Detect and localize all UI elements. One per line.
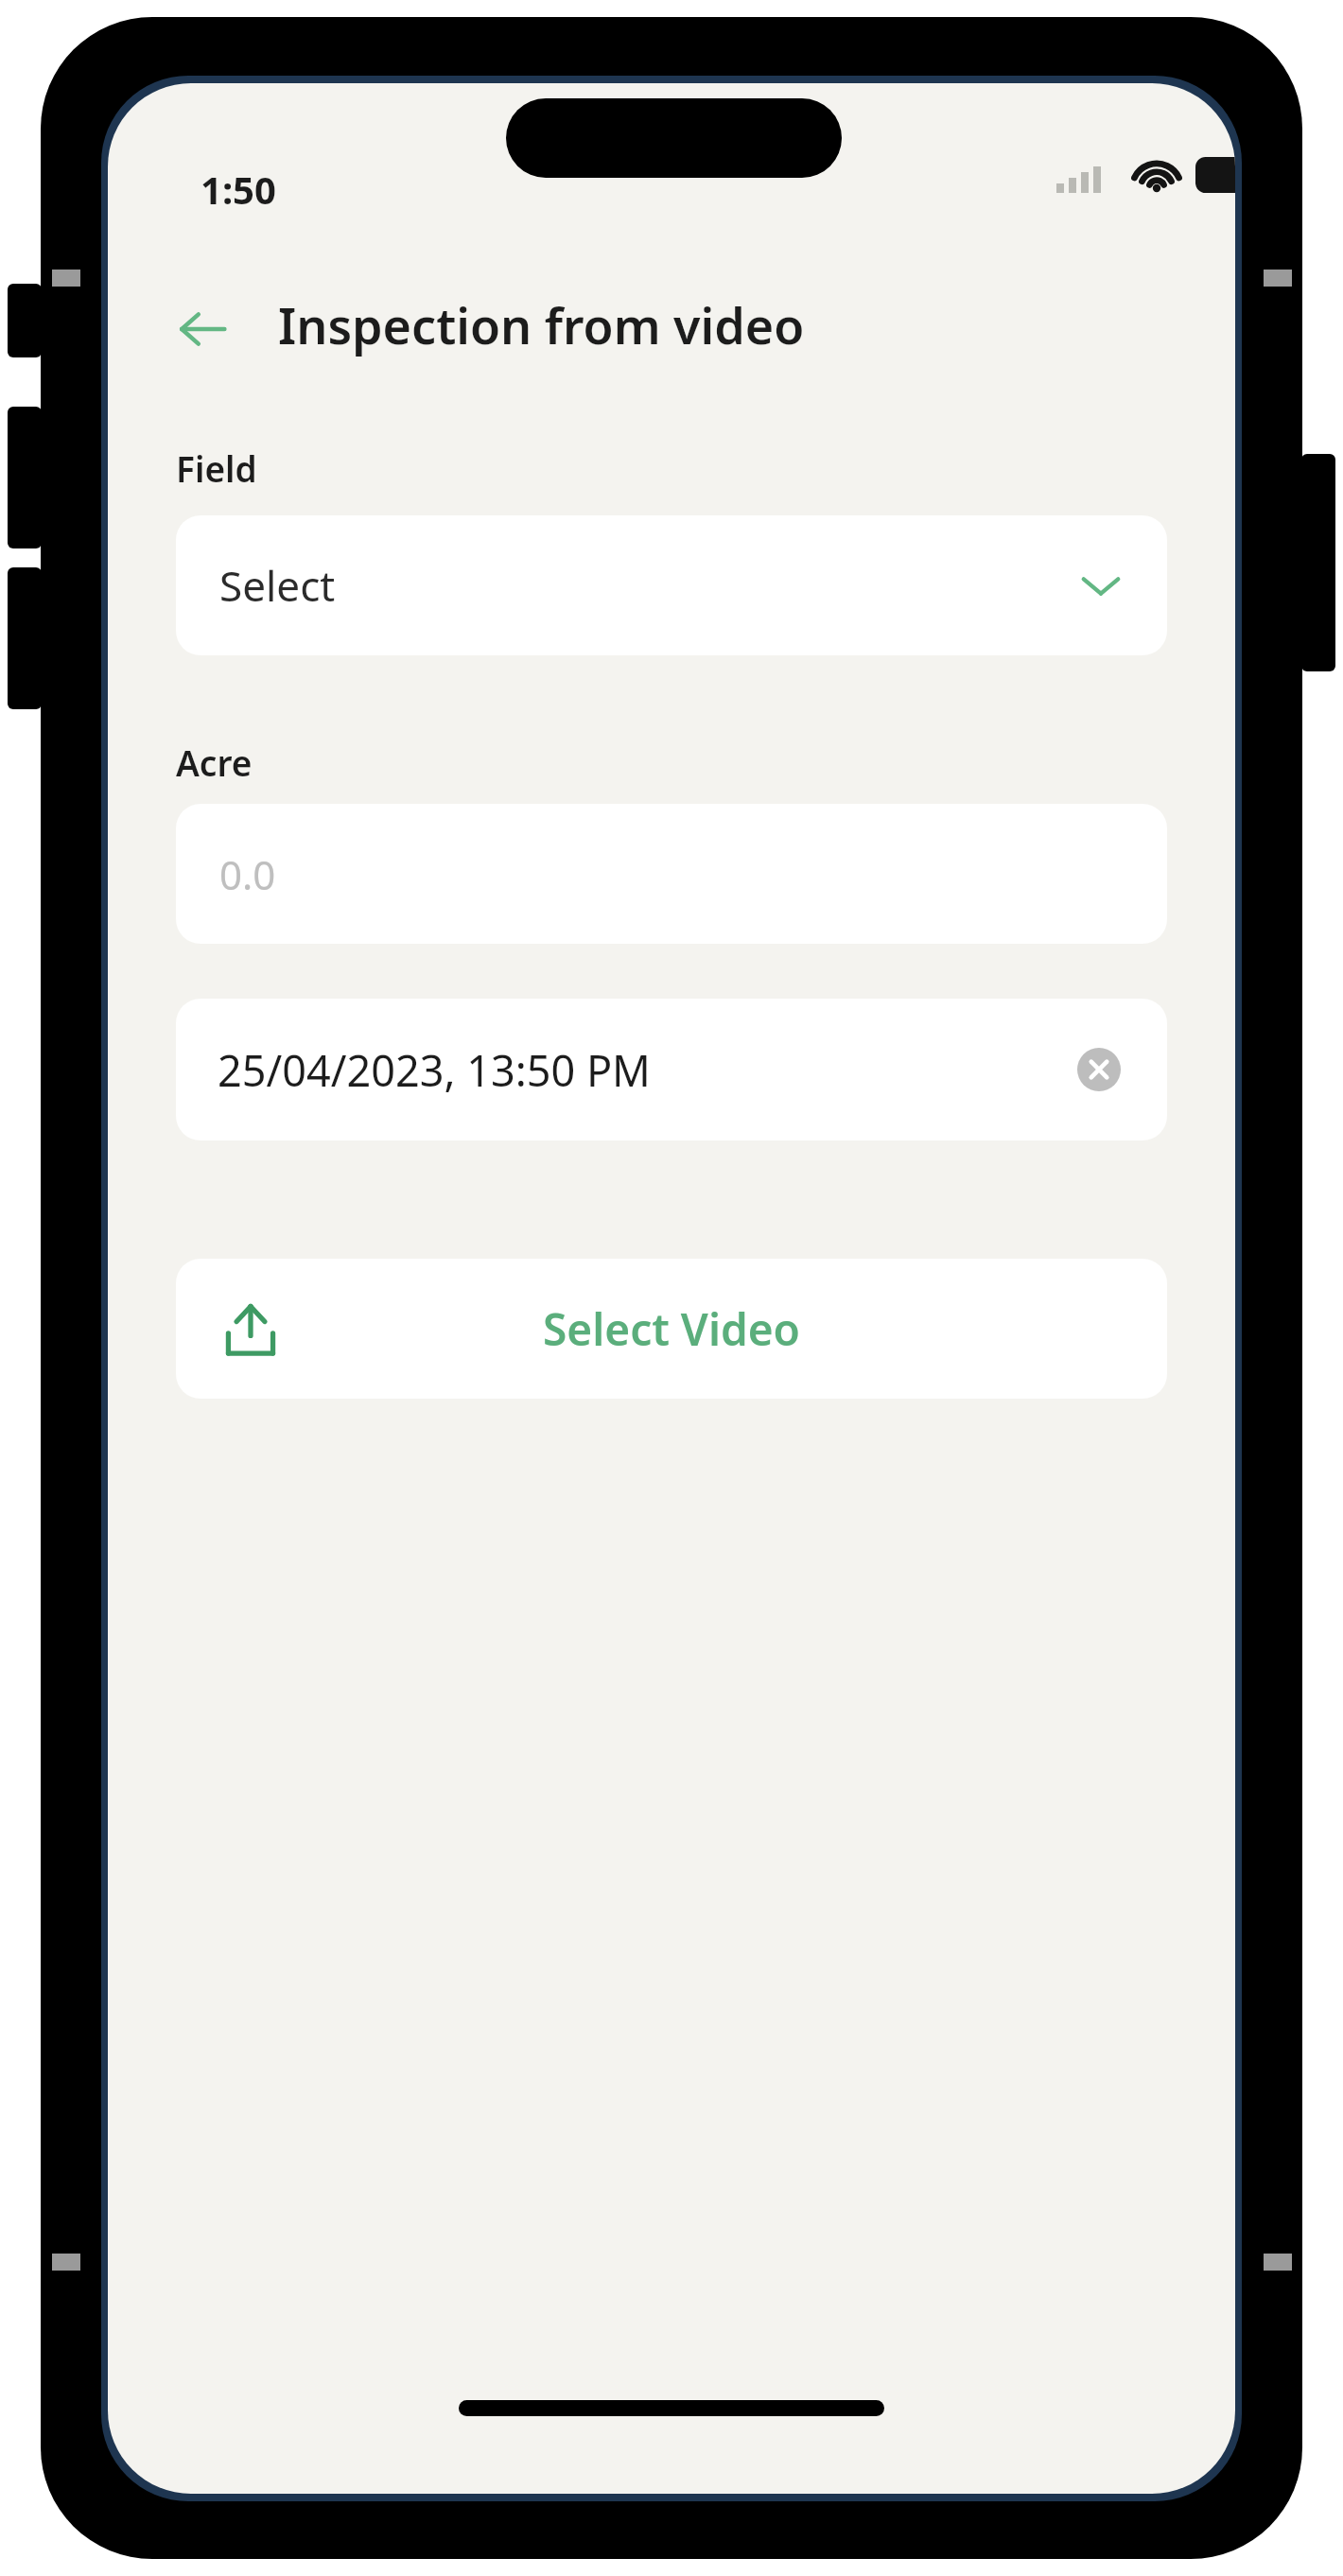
staticText: Field xyxy=(176,444,257,492)
button[interactable]: Back xyxy=(157,284,248,374)
button[interactable]: Select xyxy=(176,515,1167,655)
staticText: Select xyxy=(219,557,336,614)
staticText: Acre xyxy=(176,739,253,786)
button[interactable]: 25/04/2023, 13:50 PM xyxy=(176,999,1167,1140)
staticText: 1:50 xyxy=(201,164,276,215)
staticText: Inspection from video xyxy=(278,291,805,358)
button[interactable]: Clear date xyxy=(1073,1043,1125,1096)
staticText: 0.0 xyxy=(219,847,276,901)
staticText: Select Video xyxy=(543,1299,800,1359)
staticText: 25/04/2023, 13:50 PM xyxy=(218,1041,651,1099)
button[interactable]: Select Video xyxy=(176,1259,1167,1399)
button[interactable]: 0.0 xyxy=(176,804,1167,944)
